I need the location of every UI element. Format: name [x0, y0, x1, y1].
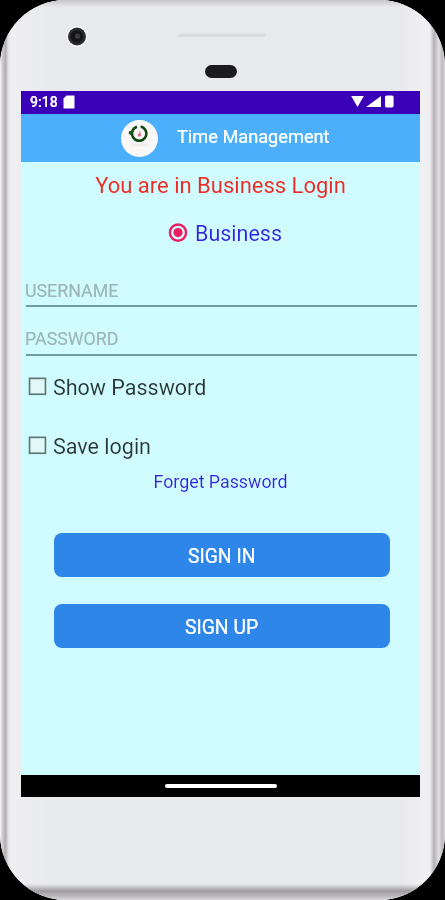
staticText: 9:18 — [30, 94, 58, 110]
button[interactable]: SIGN UP — [54, 604, 390, 648]
button[interactable]: Save login — [21, 435, 420, 461]
staticText: PASSWORD — [25, 328, 119, 349]
staticText: USERNAME — [25, 280, 119, 301]
staticText: Show Password — [53, 375, 207, 400]
staticText: Business — [195, 221, 283, 246]
staticText: Time Management — [177, 126, 330, 147]
button[interactable]: Business — [165, 220, 283, 246]
staticText: You are in Business Login — [21, 173, 420, 199]
button[interactable]: SIGN IN — [54, 533, 390, 577]
staticText: SIGN IN — [188, 545, 256, 568]
staticText: SIGN UP — [185, 616, 259, 639]
button[interactable]: Show Password — [21, 376, 420, 402]
button[interactable]: Forget Password — [21, 471, 420, 492]
staticText: Save login — [53, 434, 151, 459]
